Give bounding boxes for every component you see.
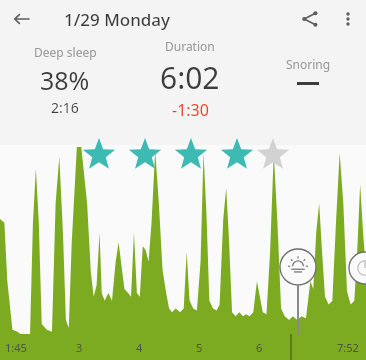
staticText: 5 [196, 340, 203, 355]
button[interactable]: Snoring [250, 56, 366, 85]
button[interactable]: Back [6, 3, 38, 35]
staticText: 3 [76, 340, 83, 355]
button[interactable]: Deep sleep [0, 44, 130, 117]
button[interactable]: Duration [130, 38, 250, 121]
staticText: Deep sleep [34, 44, 97, 60]
button[interactable]: Alarm marker [348, 251, 366, 285]
button[interactable]: Sunrise marker [279, 248, 317, 286]
staticText: 38% [40, 63, 90, 97]
staticText: 6 [256, 340, 263, 355]
staticText: -1:30 [172, 99, 209, 121]
staticText: 6:02 [160, 57, 220, 98]
staticText: Snoring [286, 56, 331, 72]
staticText: 4 [136, 340, 143, 355]
staticText: Duration [165, 38, 215, 54]
button[interactable]: More options [332, 3, 364, 35]
staticText: 2:16 [51, 98, 79, 117]
button[interactable]: Share [294, 3, 326, 35]
staticText: 1/29 Monday [64, 8, 171, 31]
staticText: 7:52 [337, 340, 359, 355]
staticText: 1:45 [5, 340, 27, 355]
